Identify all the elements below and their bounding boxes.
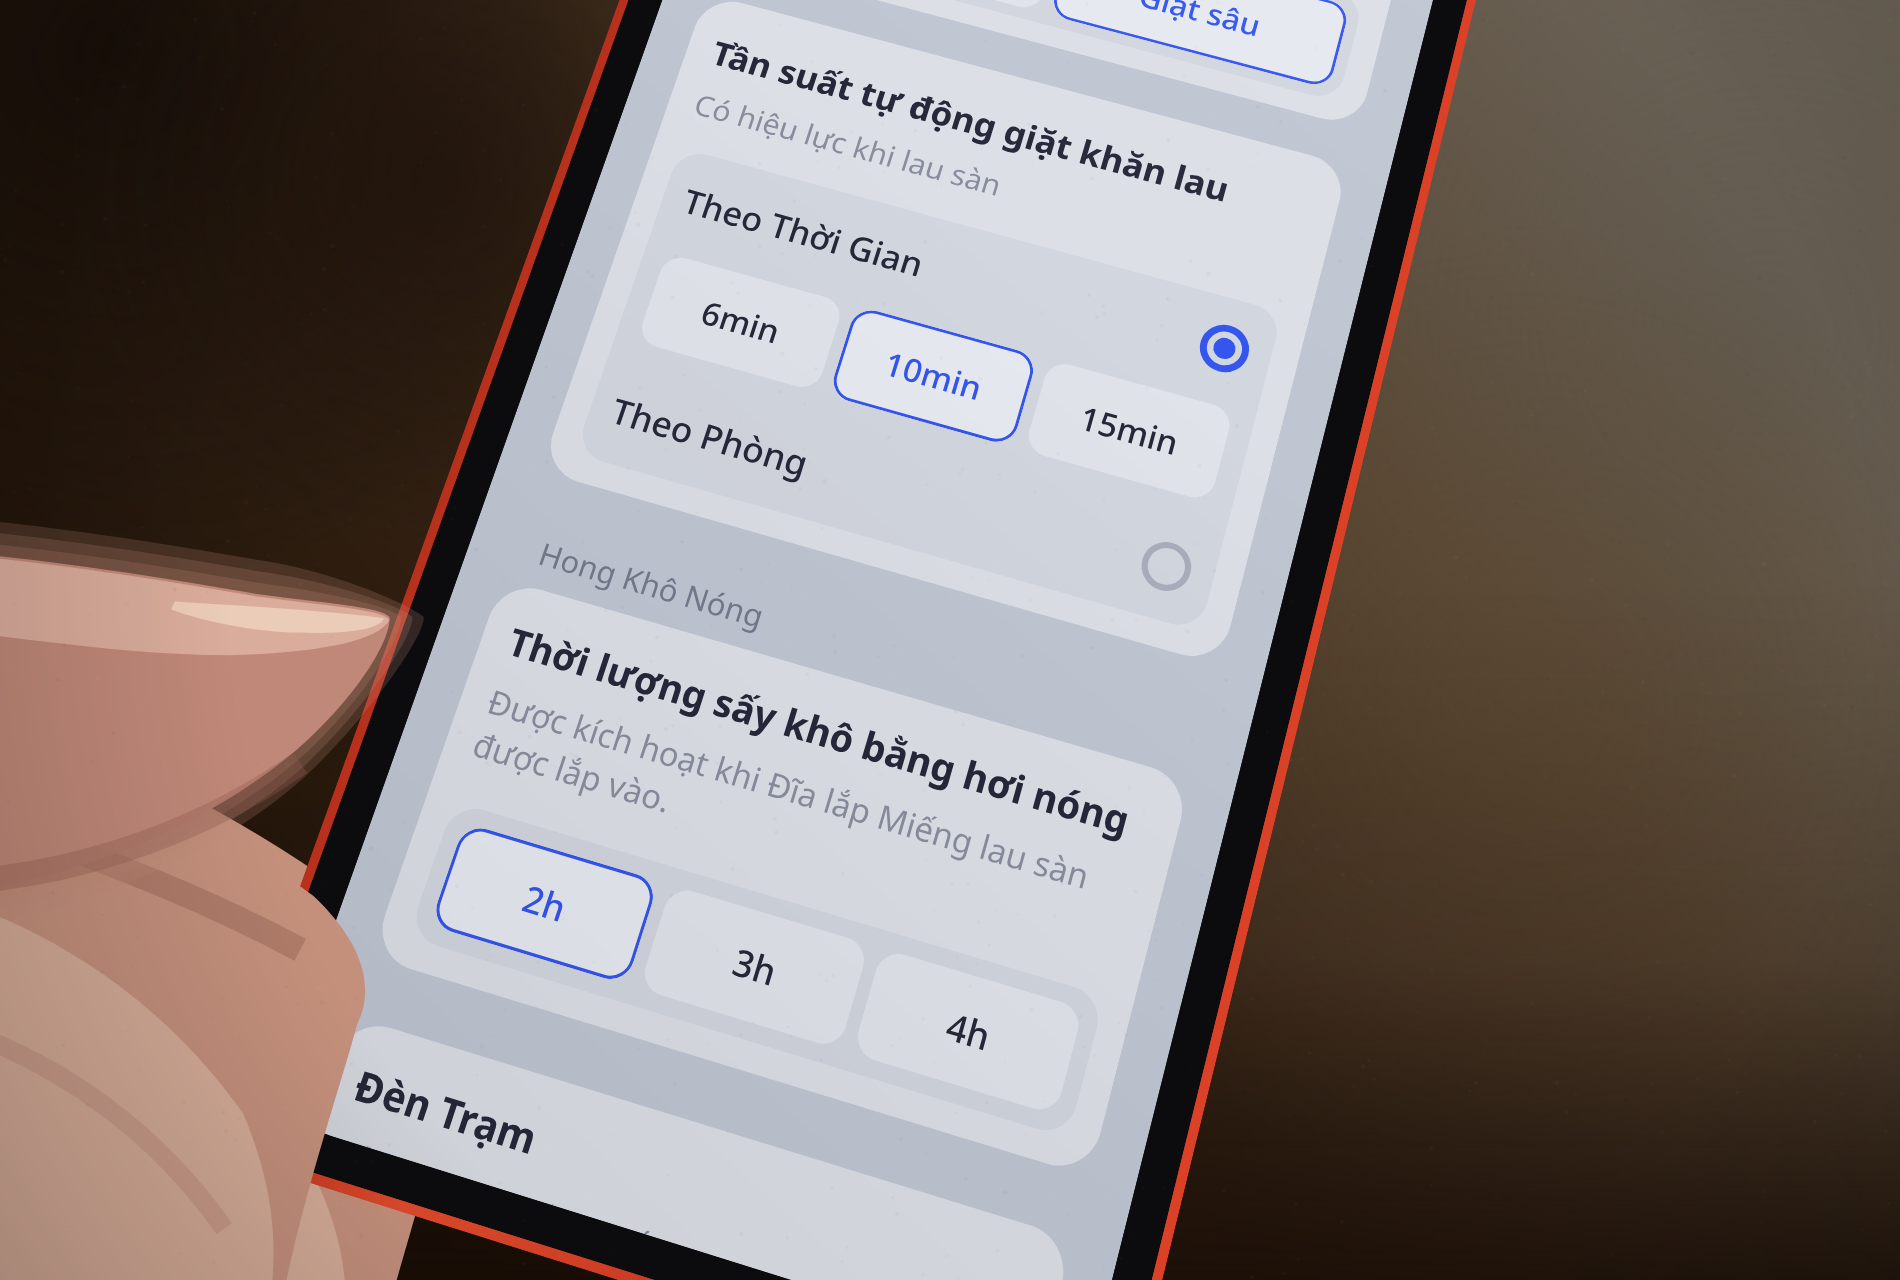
button[interactable]: Theo Thời Gian [676,174,1256,382]
staticText: Có hiệu lực khi lau sàn [689,85,1006,204]
staticText: 6min [696,291,786,353]
button[interactable]: 4h [852,948,1084,1115]
button[interactable]: Theo Phòng [603,382,1199,602]
staticText: Theo Thời Gian [677,179,929,287]
staticText: Đèn Trạm sẽ được tắt sau 10 giây trừ khi… [338,1127,1016,1280]
button[interactable]: Not selected [1135,535,1198,598]
staticText: 3h [727,936,783,997]
staticText: Đèn Trạm [347,1057,545,1167]
staticText: Thời lượng sấy khô bằng hơi nóng [502,616,1135,847]
staticText: 2h [516,873,573,933]
staticText: Theo Phòng [605,387,814,488]
button[interactable]: Giặt sâu [1049,0,1351,89]
staticText: Giặt sâu [1135,0,1265,45]
staticText: Hong Khô Nóng [533,532,770,637]
button[interactable]: 3h [639,885,870,1050]
button[interactable]: Tiêu chuẩn [764,0,1063,12]
button[interactable]: 10min [828,305,1038,447]
staticText: 15min [1075,395,1184,465]
staticText: Tần suất tự động giặt khăn lau [706,31,1235,212]
button[interactable]: Selected [1194,319,1255,378]
staticText: 10min [879,341,988,410]
staticText: 4h [941,1000,996,1062]
button[interactable]: 15min [1024,359,1234,503]
staticText: Được kích hoạt khi Đĩa lắp Miếng lau sàn… [467,679,1138,957]
button[interactable]: 6min [636,253,845,392]
button[interactable]: 2h [430,823,659,985]
